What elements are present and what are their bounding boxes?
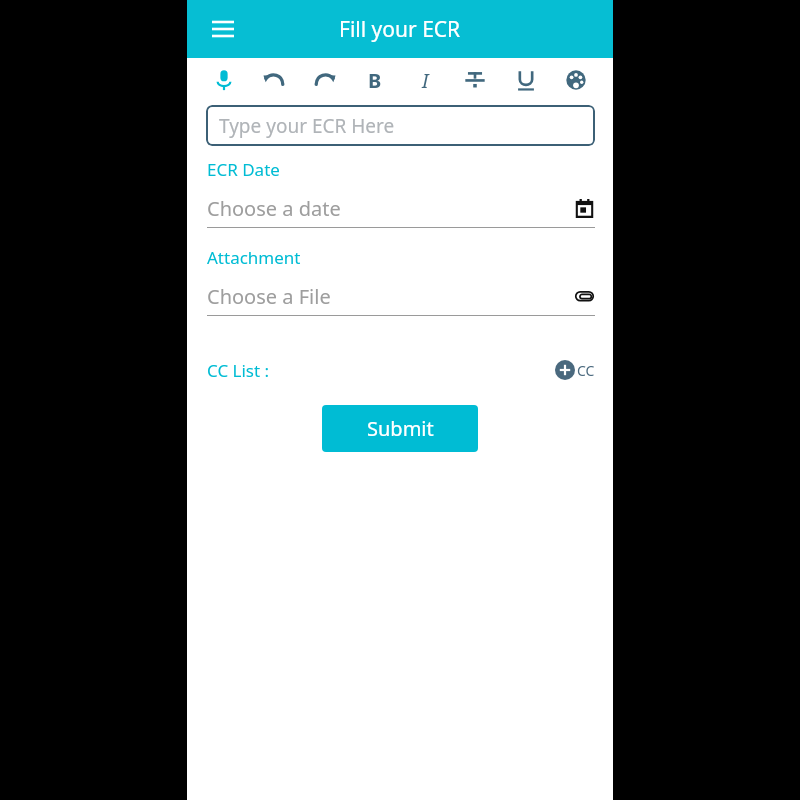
staticText: Choose a date: [207, 195, 341, 221]
button[interactable]: Text color: [559, 63, 593, 97]
staticText: Attachment: [207, 246, 301, 269]
staticText: Fill your ECR: [339, 15, 461, 44]
staticText: Choose a File: [207, 283, 331, 309]
button[interactable]: Undo: [257, 63, 291, 97]
button[interactable]: Open navigation menu: [201, 7, 245, 51]
staticText: CC: [577, 361, 595, 380]
staticText: CC List :: [207, 359, 270, 382]
staticText: I: [422, 67, 429, 94]
button[interactable]: Type your ECR Here: [206, 105, 595, 146]
staticText: Type your ECR Here: [219, 113, 395, 139]
button[interactable]: Choose a date: [207, 195, 595, 221]
button[interactable]: Underline: [509, 63, 543, 97]
staticText: ECR Date: [207, 158, 280, 181]
button[interactable]: Italic: [408, 63, 442, 97]
other: Choose a file: [573, 285, 595, 307]
button[interactable]: CC: [555, 360, 595, 380]
other: Choose a date: [573, 197, 595, 219]
staticText: B: [368, 67, 382, 94]
button[interactable]: Voice input: [207, 63, 241, 97]
button[interactable]: Choose a File: [207, 283, 595, 309]
staticText: Submit: [367, 415, 434, 442]
button[interactable]: Strikethrough: [458, 63, 492, 97]
button[interactable]: Bold: [358, 63, 392, 97]
button[interactable]: Redo: [308, 63, 342, 97]
button[interactable]: Submit: [322, 405, 478, 452]
